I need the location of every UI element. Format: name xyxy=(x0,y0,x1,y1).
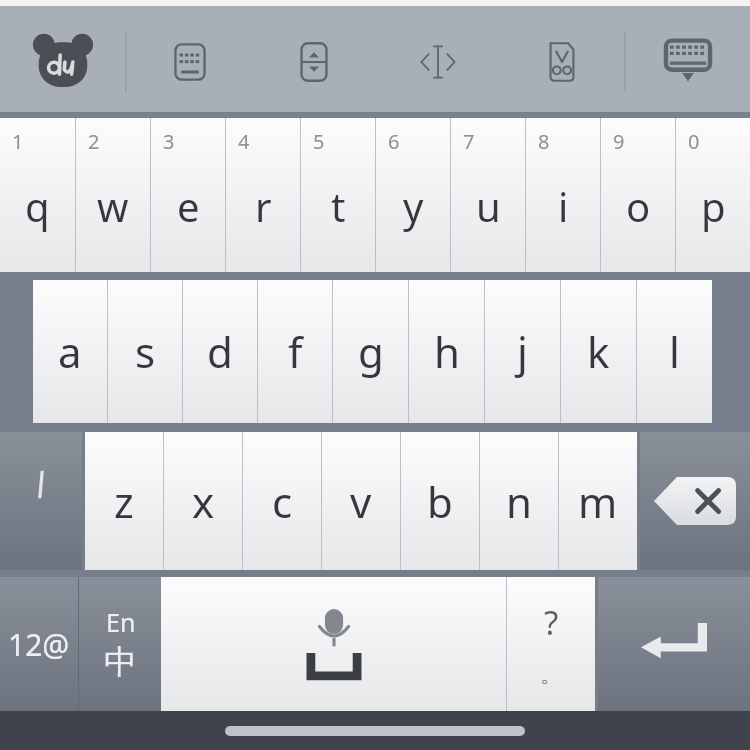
staticText: e xyxy=(177,179,200,233)
button[interactable]: n xyxy=(480,432,558,570)
staticText: ? xyxy=(544,600,559,645)
button[interactable]: f xyxy=(258,280,332,423)
staticText: g xyxy=(358,323,384,380)
staticText: En xyxy=(106,605,136,639)
staticText: l xyxy=(669,323,680,380)
staticText: m xyxy=(578,473,618,530)
staticText: w xyxy=(97,179,129,233)
button[interactable]: 2 xyxy=(76,118,150,272)
button[interactable]: 9 xyxy=(601,118,675,272)
staticText: x xyxy=(192,473,215,530)
staticText: d xyxy=(207,323,233,380)
button[interactable]: v xyxy=(322,432,400,570)
button[interactable]: Keyboard layout xyxy=(127,6,252,118)
staticText: h xyxy=(434,323,460,380)
button[interactable]: a xyxy=(33,280,107,423)
button[interactable]: j xyxy=(485,280,560,423)
button[interactable]: d xyxy=(183,280,257,423)
staticText: 。 xyxy=(540,661,562,689)
staticText: t xyxy=(331,179,346,233)
button[interactable] xyxy=(161,577,506,711)
button[interactable]: c xyxy=(243,432,321,570)
button[interactable]: 0 xyxy=(676,118,750,272)
button[interactable]: Baidu input xyxy=(0,6,125,118)
button[interactable]: 6 xyxy=(376,118,450,272)
staticText: c xyxy=(272,473,293,530)
staticText: u xyxy=(476,179,501,233)
staticText: 12@ xyxy=(8,624,70,665)
button[interactable]: Shift xyxy=(0,432,82,570)
staticText: i xyxy=(558,179,569,233)
button[interactable]: z xyxy=(85,432,163,570)
staticText: v xyxy=(350,473,372,530)
staticText: k xyxy=(587,323,610,380)
staticText: 8 xyxy=(538,128,550,155)
staticText: 1 xyxy=(12,128,24,155)
staticText: 5 xyxy=(313,128,325,155)
staticText: q xyxy=(25,179,50,233)
staticText: 9 xyxy=(613,128,625,155)
button[interactable]: 4 xyxy=(226,118,300,272)
staticText: 6 xyxy=(388,128,400,155)
staticText: 2 xyxy=(88,128,100,155)
button[interactable]: b xyxy=(401,432,479,570)
staticText: 中 xyxy=(104,641,137,683)
button[interactable]: Move up down xyxy=(252,6,376,118)
button[interactable]: Enter xyxy=(598,577,750,711)
button[interactable]: h xyxy=(409,280,484,423)
button[interactable]: 1 xyxy=(0,118,75,272)
button[interactable]: m xyxy=(559,432,637,570)
button[interactable]: Cursor xyxy=(376,6,500,118)
staticText: y xyxy=(403,179,424,233)
button[interactable]: ? xyxy=(507,577,595,711)
button[interactable]: Clipboard xyxy=(500,6,624,118)
staticText: n xyxy=(506,473,532,530)
button[interactable]: 12@ xyxy=(0,577,78,711)
button[interactable]: l xyxy=(637,280,712,423)
button[interactable]: 3 xyxy=(151,118,225,272)
button[interactable]: Backspace xyxy=(640,432,750,570)
button[interactable]: k xyxy=(561,280,636,423)
button[interactable]: Hide keyboard xyxy=(626,6,750,118)
staticText: 0 xyxy=(688,128,700,155)
staticText: p xyxy=(701,179,726,233)
button[interactable]: En xyxy=(79,577,161,711)
staticText: 4 xyxy=(238,128,250,155)
staticText: s xyxy=(135,323,156,380)
button[interactable]: 5 xyxy=(301,118,375,272)
staticText: r xyxy=(255,179,272,233)
staticText: z xyxy=(114,473,134,530)
staticText: 7 xyxy=(463,128,475,155)
staticText: 3 xyxy=(163,128,175,155)
staticText: b xyxy=(427,473,453,530)
button[interactable]: s xyxy=(108,280,182,423)
button[interactable]: 8 xyxy=(526,118,600,272)
staticText: j xyxy=(517,323,528,380)
staticText: a xyxy=(58,323,82,380)
button[interactable]: 7 xyxy=(451,118,525,272)
staticText: o xyxy=(626,179,651,233)
button[interactable]: x xyxy=(164,432,242,570)
staticText: f xyxy=(288,323,303,380)
button[interactable]: g xyxy=(333,280,408,423)
